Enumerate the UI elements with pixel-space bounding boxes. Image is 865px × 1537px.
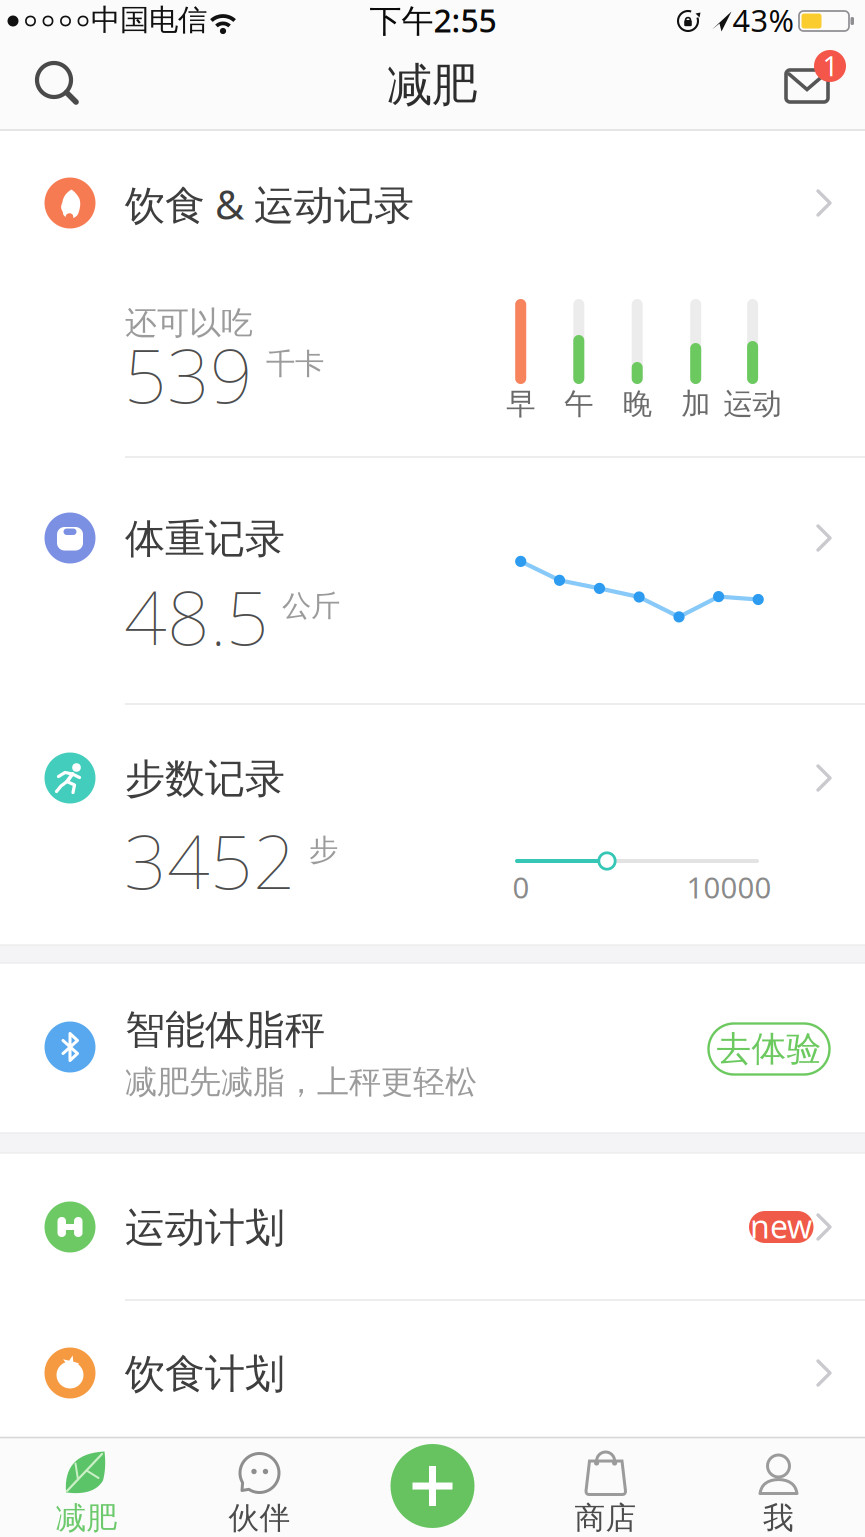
button[interactable]: 我 (692, 1437, 865, 1537)
staticText: 去体验 (716, 1028, 821, 1070)
button[interactable]: 饮食 & 运动记录 (0, 131, 865, 457)
staticText: 48.5 (124, 566, 269, 666)
staticText: 运动计划 (125, 1203, 285, 1252)
button[interactable]: Messages (781, 53, 851, 115)
button[interactable]: Add (387, 1441, 477, 1531)
staticText: 10000 (686, 867, 771, 906)
staticText: 3452 (124, 810, 296, 910)
button[interactable]: 体重记录 (0, 457, 865, 704)
button[interactable]: 饮食计划 (0, 1300, 865, 1437)
staticText: 晚 (623, 386, 652, 422)
staticText: 539 (124, 324, 253, 424)
staticText: new (750, 1205, 812, 1247)
staticText: 饮食计划 (125, 1349, 285, 1398)
button[interactable]: 运动计划 (0, 1153, 865, 1300)
button[interactable]: 步数记录 (0, 704, 865, 945)
staticText: 43% (732, 0, 793, 40)
staticText: 加 (681, 386, 710, 422)
staticText: 下午2:55 (369, 0, 496, 41)
staticText: 运动 (724, 386, 782, 422)
staticText: 千卡 (266, 346, 324, 382)
staticText: 智能体脂秤 (125, 1005, 325, 1054)
staticText: 中国电信 (91, 2, 207, 38)
staticText: 早 (506, 386, 535, 422)
staticText: 公斤 (282, 588, 340, 624)
staticText: 伙伴 (228, 1499, 290, 1537)
staticText: 体重记录 (125, 514, 285, 563)
staticText: 还可以吃 (125, 303, 253, 343)
staticText: 减肥先减脂，上秤更轻松 (125, 1062, 477, 1102)
staticText: 减肥 (387, 57, 477, 113)
button[interactable]: 减肥 (0, 1437, 173, 1537)
staticText: 商店 (574, 1499, 636, 1537)
staticText: 步数记录 (125, 754, 285, 803)
staticText: 午 (564, 386, 593, 422)
staticText: 减肥 (55, 1499, 117, 1537)
staticText: 1 (822, 47, 838, 84)
button[interactable]: Search (28, 56, 88, 116)
button[interactable]: 伙伴 (173, 1437, 346, 1537)
staticText: 步 (309, 832, 338, 868)
button[interactable]: 去体验 (707, 1022, 831, 1076)
staticText: 0 (512, 867, 529, 906)
staticText: 我 (763, 1499, 794, 1537)
staticText: 饮食 & 运动记录 (125, 177, 414, 230)
button[interactable]: 智能体脂秤 (0, 963, 865, 1133)
button[interactable]: 商店 (519, 1437, 692, 1537)
